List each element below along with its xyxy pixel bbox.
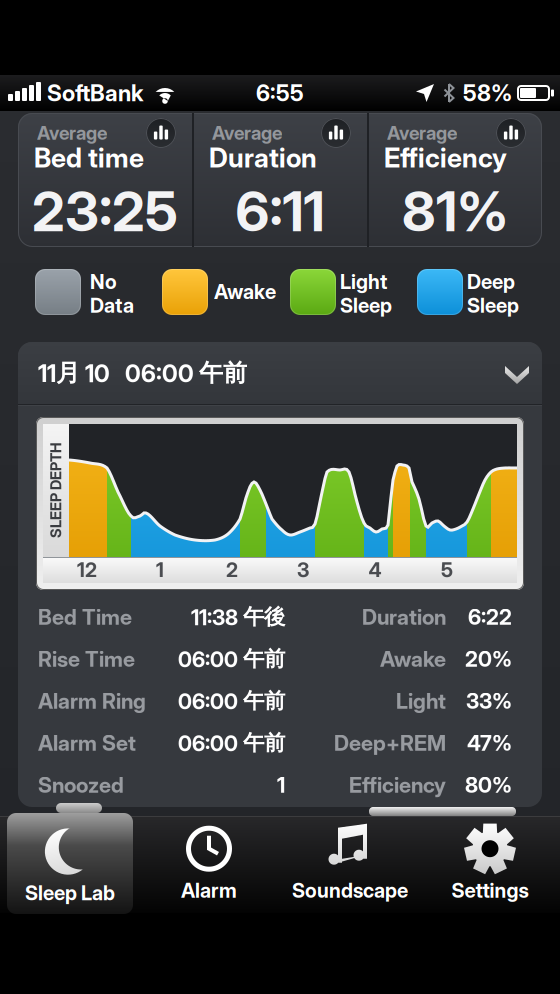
staticText: Settings bbox=[451, 879, 528, 902]
button[interactable]: Show statistics graph bbox=[321, 118, 351, 148]
button[interactable]: Alarm bbox=[139, 817, 279, 909]
staticText: Average bbox=[37, 122, 107, 144]
button[interactable]: Delete record bbox=[369, 807, 516, 816]
staticText: Awake bbox=[214, 280, 276, 304]
staticText: Data bbox=[90, 294, 134, 317]
staticText: Alarm Set bbox=[38, 730, 136, 756]
staticText: Average bbox=[387, 122, 457, 144]
staticText: Snoozed bbox=[38, 772, 124, 798]
staticText: 12 bbox=[77, 558, 97, 582]
button[interactable]: Show statistics graph bbox=[496, 118, 526, 148]
staticText: 81% bbox=[402, 179, 508, 243]
staticText: Efficiency bbox=[384, 142, 507, 173]
staticText: Alarm bbox=[181, 879, 237, 902]
staticText: 23:25 bbox=[32, 179, 178, 243]
staticText: 58% bbox=[463, 80, 512, 106]
button[interactable]: Settings bbox=[420, 817, 560, 909]
staticText: SoftBank bbox=[47, 80, 143, 106]
staticText: 11:38 午後 bbox=[191, 604, 285, 630]
staticText: Awake bbox=[380, 646, 446, 672]
staticText: 06:00 午前 bbox=[178, 730, 285, 756]
staticText: No bbox=[90, 270, 117, 294]
staticText: Sleep bbox=[340, 294, 392, 317]
staticText: Average bbox=[212, 122, 282, 144]
button[interactable]: Share bbox=[56, 803, 102, 813]
staticText: 47% bbox=[467, 730, 512, 756]
staticText: 80% bbox=[465, 772, 512, 798]
staticText: 6:11 bbox=[235, 179, 324, 243]
staticText: 1 bbox=[277, 772, 285, 798]
staticText: Alarm Ring bbox=[38, 688, 146, 714]
staticText: Sleep Lab bbox=[25, 881, 115, 905]
staticText: 4 bbox=[368, 558, 381, 582]
staticText: Light bbox=[340, 270, 387, 294]
staticText: Duration bbox=[362, 604, 446, 630]
staticText: Deep+REM bbox=[334, 730, 446, 756]
staticText: 6:55 bbox=[256, 80, 304, 106]
staticText: Bed time bbox=[34, 142, 144, 173]
button[interactable]: Soundscape bbox=[280, 817, 420, 909]
staticText: 6:22 bbox=[468, 604, 512, 630]
staticText: 06:00 午前 bbox=[178, 646, 285, 672]
button[interactable]: Show statistics graph bbox=[146, 118, 176, 148]
staticText: 06:00 午前 bbox=[178, 688, 285, 714]
staticText: Bed Time bbox=[38, 604, 132, 630]
button[interactable]: 11月 10 06:00 午前 bbox=[18, 342, 542, 404]
staticText: Soundscape bbox=[292, 879, 408, 902]
staticText: Efficiency bbox=[349, 772, 446, 798]
staticText: 20% bbox=[465, 646, 512, 672]
staticText: 33% bbox=[466, 688, 512, 714]
staticText: Rise Time bbox=[38, 646, 135, 672]
staticText: 11月 10 06:00 午前 bbox=[38, 358, 247, 388]
staticText: 5 bbox=[441, 558, 453, 582]
button[interactable]: Sleep Lab bbox=[7, 813, 133, 914]
staticText: Light bbox=[396, 688, 446, 714]
staticText: Duration bbox=[209, 142, 317, 173]
staticText: 1 bbox=[156, 558, 164, 582]
staticText: 3 bbox=[297, 558, 309, 582]
staticText: SLEEP DEPTH bbox=[8, 481, 104, 499]
staticText: 2 bbox=[226, 558, 238, 582]
staticText: Deep bbox=[467, 270, 515, 294]
staticText: Sleep bbox=[467, 294, 519, 317]
